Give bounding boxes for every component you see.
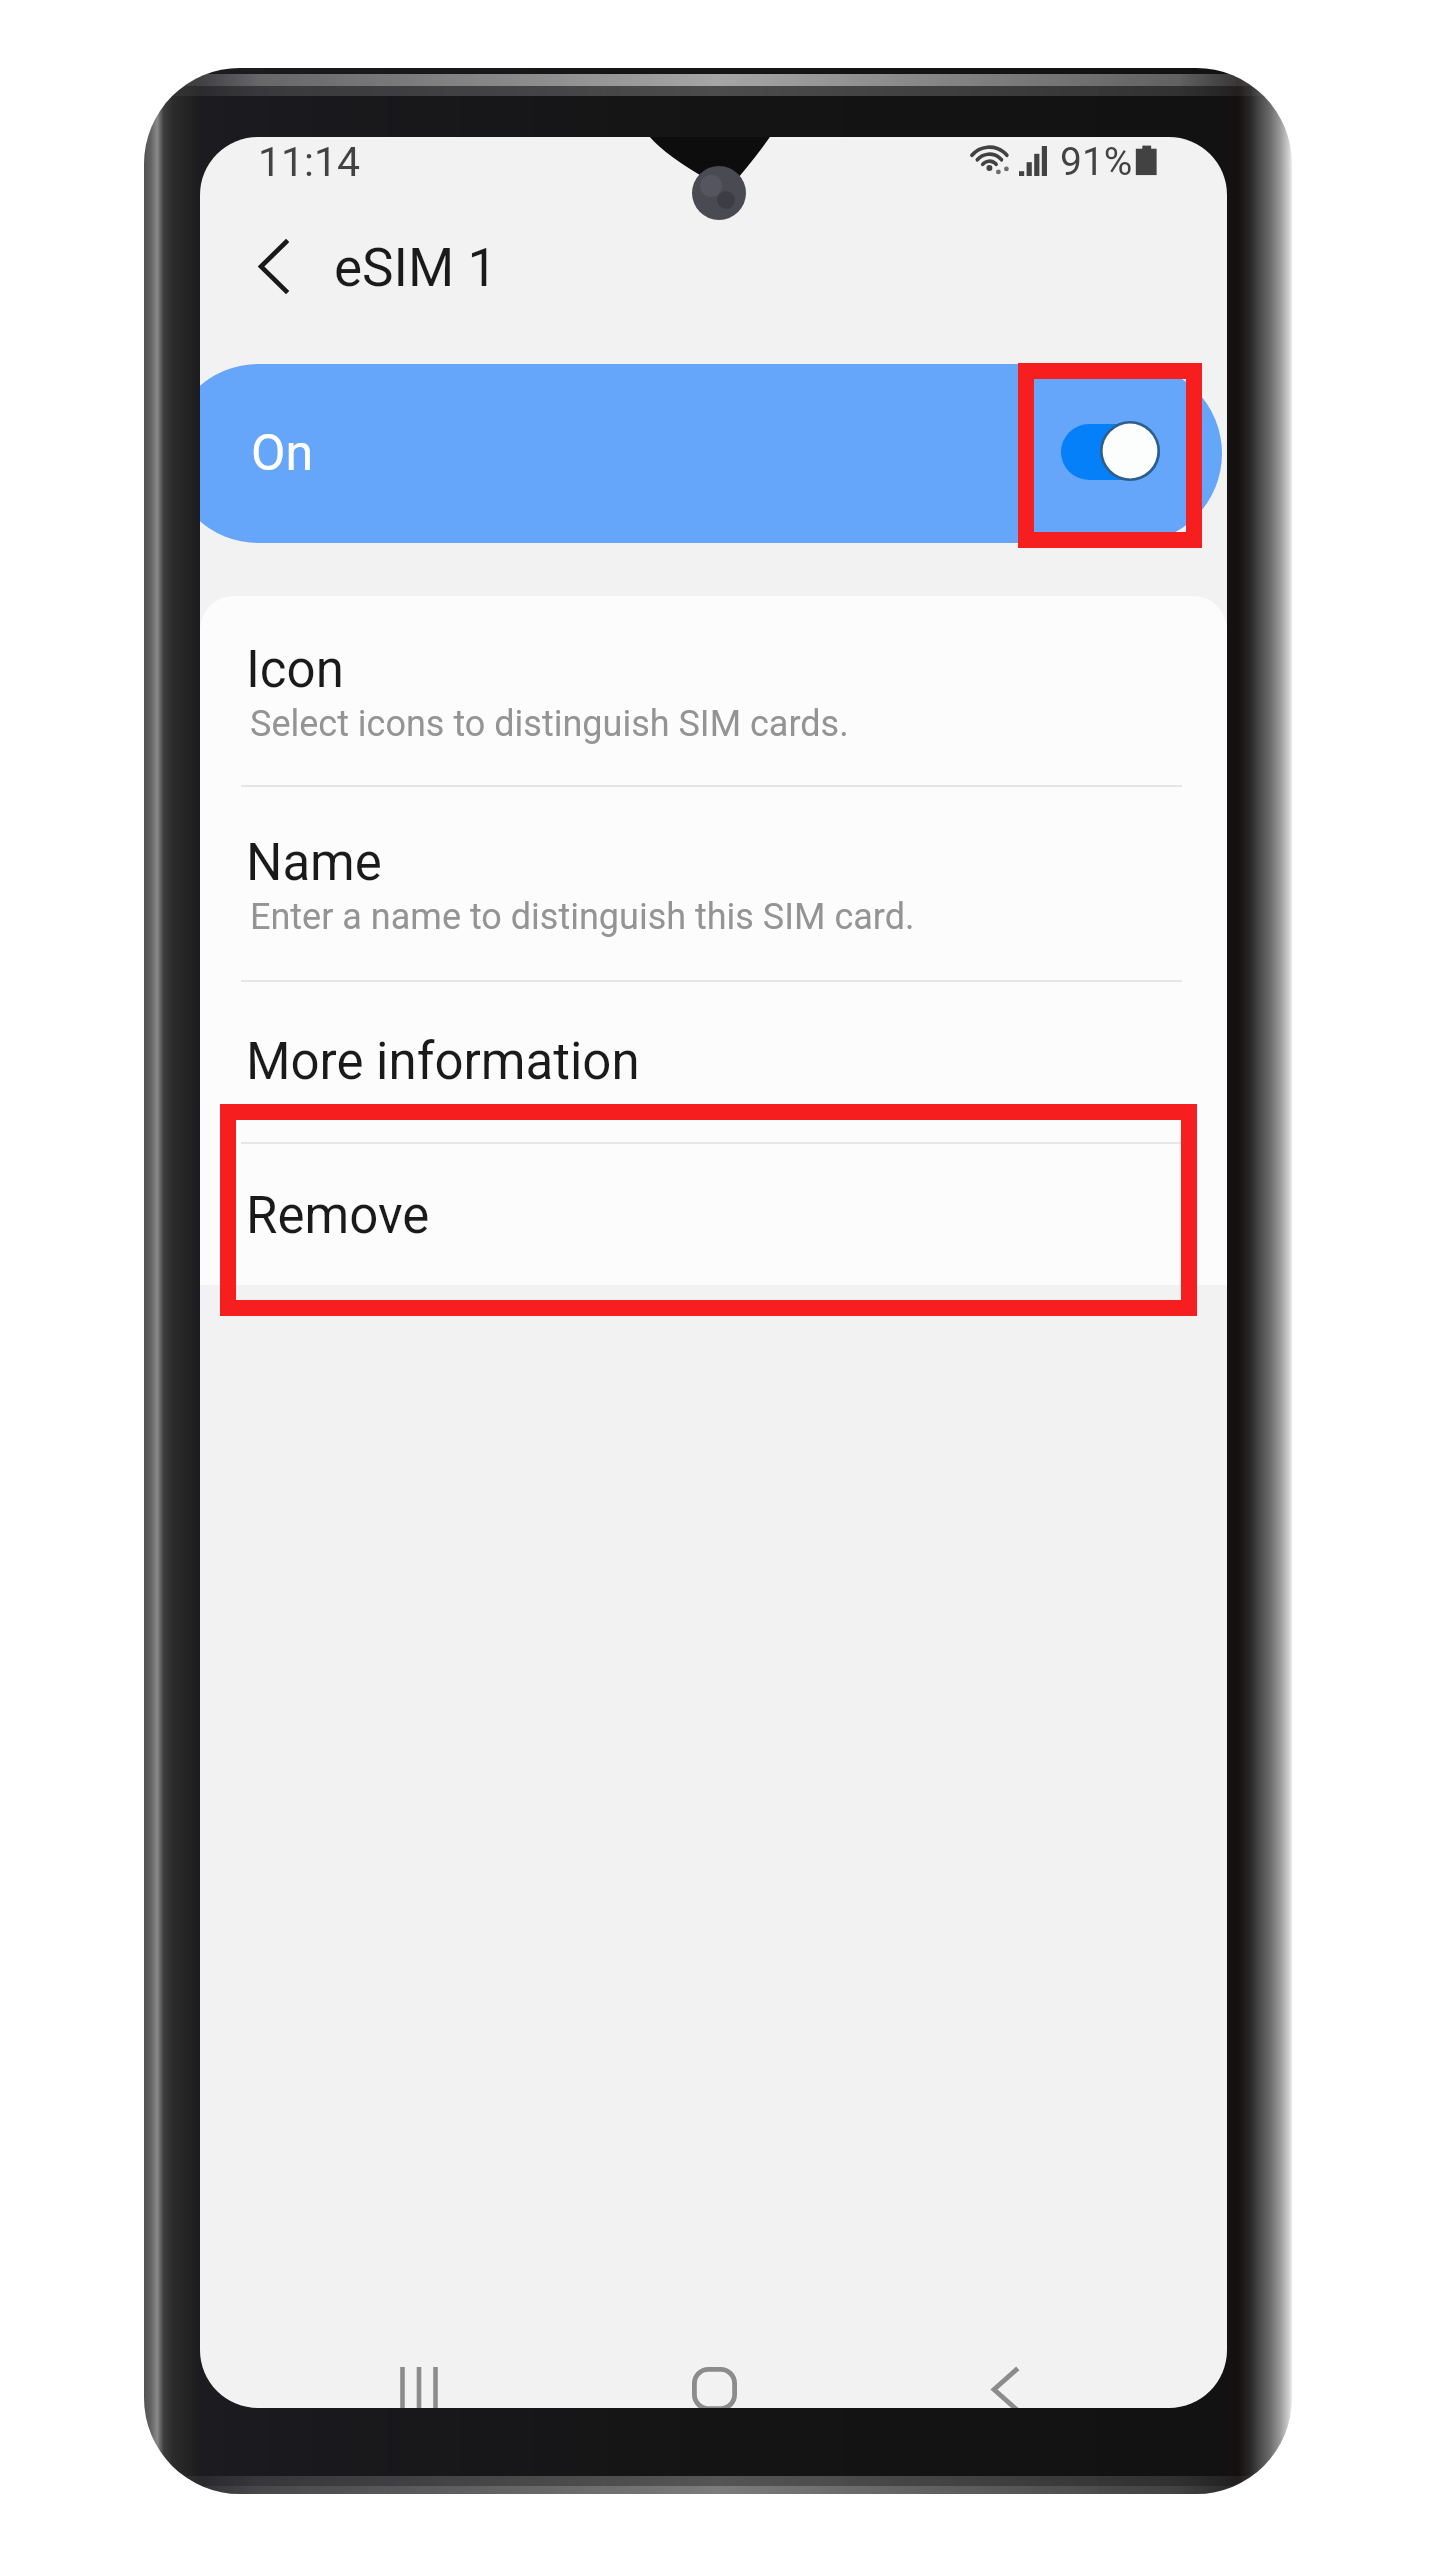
button[interactable]: Back — [935, 2330, 1075, 2408]
button[interactable]: Home — [642, 2330, 786, 2408]
button[interactable]: Recent apps — [349, 2330, 489, 2408]
button[interactable]: Icon — [200, 596, 1227, 785]
staticText: Remove — [246, 1186, 430, 1246]
staticText: eSIM 1 — [334, 237, 498, 299]
button[interactable]: On — [200, 364, 1222, 543]
staticText: Icon — [246, 640, 344, 700]
staticText: Name — [246, 833, 382, 893]
staticText: 11:14 — [258, 138, 361, 186]
staticText: Enter a name to distinguish this SIM car… — [250, 896, 915, 938]
staticText: Select icons to distinguish SIM cards. — [250, 703, 849, 745]
staticText: 91% — [1060, 139, 1133, 185]
button[interactable]: Remove — [200, 1142, 1227, 1285]
button[interactable]: Name — [200, 785, 1227, 980]
staticText: More information — [246, 1032, 640, 1092]
button[interactable]: More information — [200, 980, 1227, 1142]
other: Mobile signal — [1017, 146, 1051, 176]
other: Battery 91 percent — [1134, 145, 1160, 176]
other: Wi-Fi connected — [975, 145, 1011, 174]
button[interactable]: eSIM 1 on/off switch, on — [1055, 418, 1167, 488]
staticText: On — [251, 424, 314, 483]
button[interactable]: Navigate up — [223, 214, 323, 318]
